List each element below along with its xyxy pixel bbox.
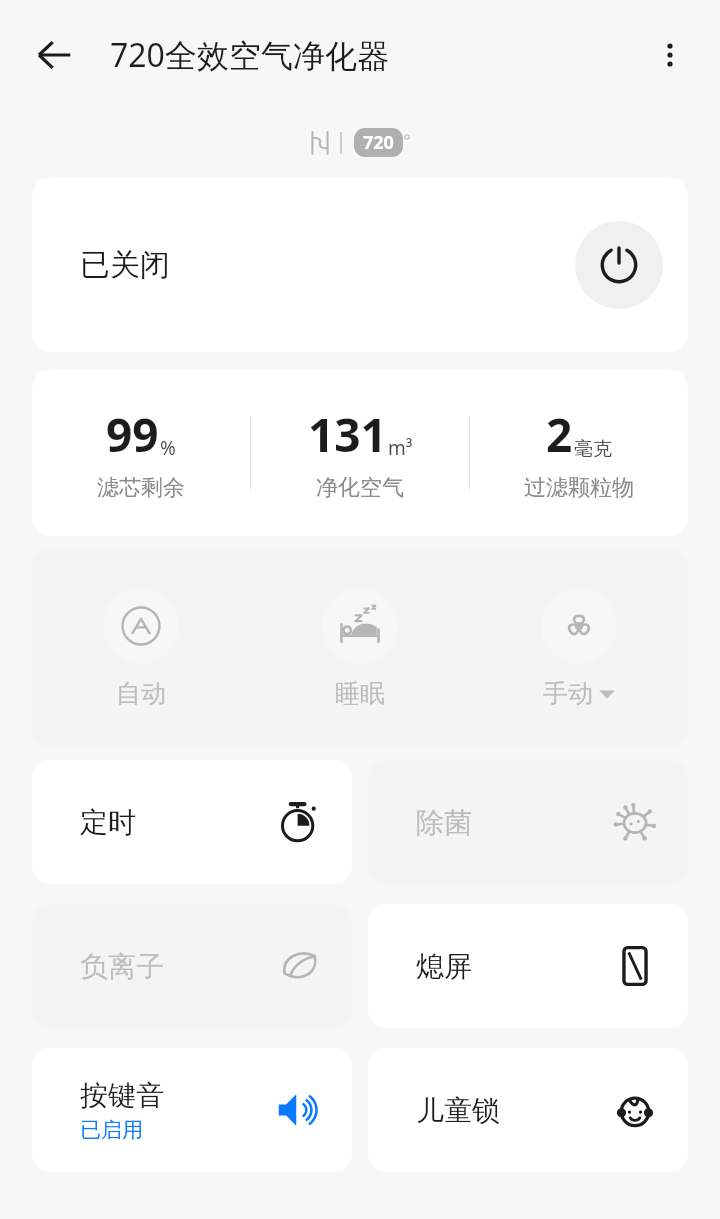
staticText: 自动 — [116, 678, 166, 709]
staticText: 131 — [308, 403, 387, 466]
staticText: 睡眠 — [335, 678, 385, 709]
button[interactable]: More options — [640, 25, 700, 85]
staticText: % — [160, 435, 176, 461]
staticText: 720全效空气净化器 — [110, 33, 389, 77]
staticText: 儿童锁 — [416, 1093, 500, 1128]
staticText: 720 — [363, 130, 394, 155]
staticText: 净化空气 — [316, 474, 404, 502]
button[interactable]: 99 — [32, 369, 250, 536]
staticText: 毫克 — [574, 437, 612, 461]
button[interactable]: Back — [22, 23, 86, 87]
button[interactable]: 131 — [251, 369, 469, 536]
staticText: 已启用 — [80, 1117, 143, 1143]
staticText: 定时 — [80, 805, 136, 840]
button[interactable]: 定时 — [32, 760, 352, 884]
staticText: 除菌 — [416, 805, 472, 840]
staticText: 手动 — [543, 678, 593, 709]
staticText: m³ — [388, 435, 413, 461]
button[interactable]: 自动 — [32, 549, 250, 747]
staticText: 滤芯剩余 — [97, 474, 185, 502]
button[interactable]: 2 — [470, 369, 688, 536]
button[interactable]: 按键音 — [32, 1048, 352, 1172]
button[interactable]: 手动 — [469, 549, 688, 747]
button[interactable]: 负离子 — [32, 904, 352, 1028]
button[interactable]: 儿童锁 — [368, 1048, 688, 1172]
staticText: 2 — [546, 403, 573, 466]
button[interactable]: 除菌 — [368, 760, 688, 884]
staticText: 99 — [106, 403, 159, 466]
button[interactable]: Power — [575, 221, 663, 309]
staticText: 已关闭 — [80, 246, 170, 284]
staticText: 负离子 — [80, 949, 164, 984]
button[interactable]: 睡眠 — [250, 549, 469, 747]
staticText: 按键音 — [80, 1078, 164, 1113]
button[interactable]: 已关闭 — [32, 177, 688, 352]
button[interactable]: 熄屏 — [368, 904, 688, 1028]
staticText: 熄屏 — [416, 949, 472, 984]
staticText: 过滤颗粒物 — [524, 474, 634, 502]
